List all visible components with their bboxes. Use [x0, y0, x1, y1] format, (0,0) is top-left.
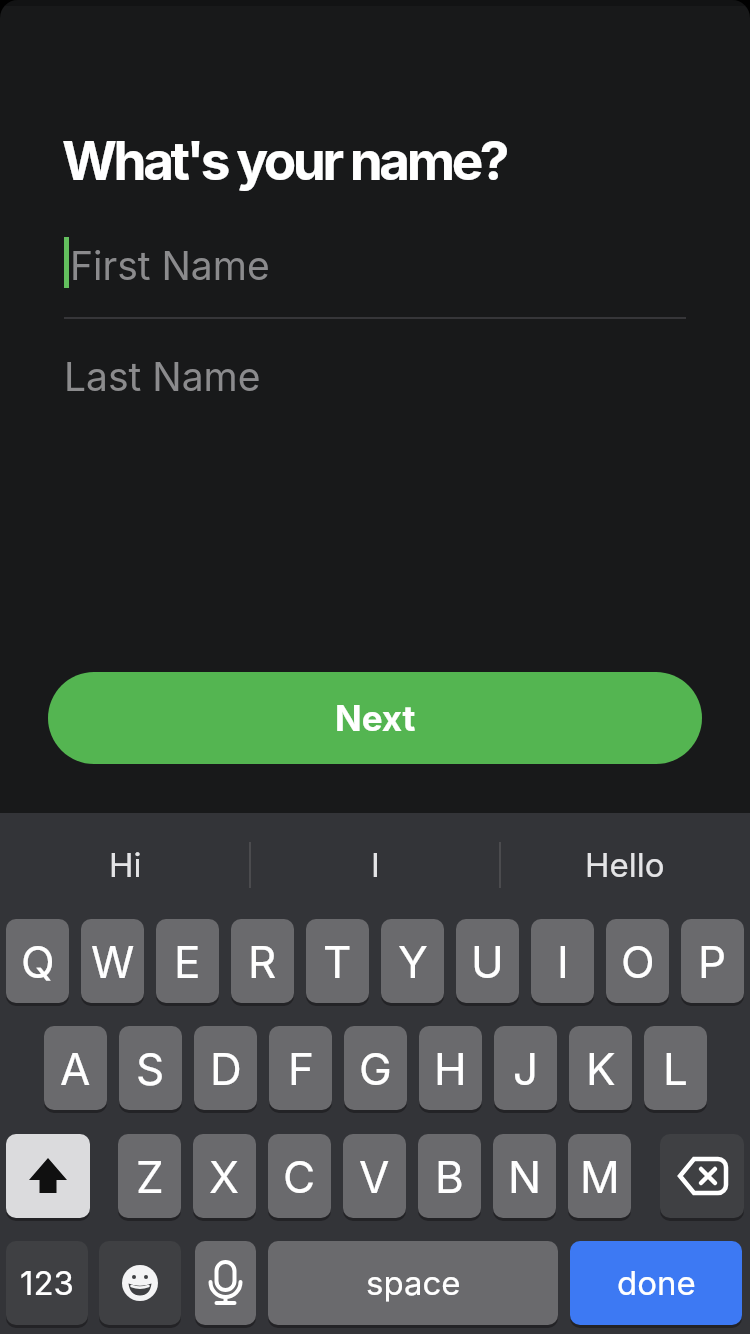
- button[interactable]: Q: [6, 919, 69, 1003]
- staticText: E: [174, 935, 201, 988]
- button[interactable]: [6, 1134, 90, 1218]
- button[interactable]: Hi: [0, 813, 250, 917]
- staticText: done: [617, 1263, 696, 1303]
- button[interactable]: Y: [381, 919, 444, 1003]
- staticText: B: [435, 1150, 464, 1203]
- button[interactable]: G: [344, 1026, 407, 1110]
- button[interactable]: Hello: [500, 813, 750, 917]
- staticText: Z: [136, 1150, 164, 1203]
- button[interactable]: Next: [48, 672, 702, 764]
- button[interactable]: done: [570, 1241, 742, 1325]
- staticText: Q: [21, 935, 55, 988]
- button[interactable]: 123: [6, 1241, 88, 1325]
- button[interactable]: P: [681, 919, 744, 1003]
- button[interactable]: U: [456, 919, 519, 1003]
- staticText: Hello: [585, 845, 665, 885]
- staticText: First Name: [70, 242, 270, 289]
- button[interactable]: B: [418, 1134, 481, 1218]
- staticText: Next: [335, 697, 416, 739]
- staticText: U: [471, 935, 504, 988]
- staticText: K: [586, 1042, 616, 1095]
- staticText: J: [513, 1042, 539, 1095]
- button[interactable]: Last Name: [64, 345, 684, 415]
- button[interactable]: [99, 1241, 181, 1325]
- staticText: P: [698, 935, 727, 988]
- button[interactable]: V: [343, 1134, 406, 1218]
- staticText: F: [288, 1042, 314, 1095]
- staticText: T: [323, 935, 352, 988]
- staticText: I: [557, 935, 569, 988]
- button[interactable]: C: [268, 1134, 331, 1218]
- staticText: M: [580, 1150, 620, 1203]
- button[interactable]: First Name: [68, 230, 688, 300]
- staticText: O: [621, 935, 655, 988]
- staticText: V: [359, 1150, 390, 1203]
- staticText: G: [359, 1042, 392, 1095]
- button[interactable]: I: [250, 813, 500, 917]
- staticText: C: [283, 1150, 316, 1203]
- staticText: space: [366, 1263, 461, 1303]
- button[interactable]: E: [156, 919, 219, 1003]
- staticText: A: [60, 1042, 91, 1095]
- staticText: What's your name?: [62, 129, 507, 193]
- button[interactable]: [195, 1241, 256, 1325]
- button[interactable]: space: [268, 1241, 558, 1325]
- button[interactable]: J: [494, 1026, 557, 1110]
- staticText: L: [663, 1042, 688, 1095]
- button[interactable]: F: [269, 1026, 332, 1110]
- button[interactable]: L: [644, 1026, 707, 1110]
- button[interactable]: W: [81, 919, 144, 1003]
- button[interactable]: H: [419, 1026, 482, 1110]
- button[interactable]: D: [194, 1026, 257, 1110]
- staticText: W: [91, 935, 135, 988]
- staticText: R: [248, 935, 277, 988]
- staticText: N: [508, 1150, 542, 1203]
- staticText: D: [210, 1042, 242, 1095]
- button[interactable]: [660, 1134, 744, 1218]
- button[interactable]: I: [531, 919, 594, 1003]
- button[interactable]: O: [606, 919, 669, 1003]
- staticText: Last Name: [64, 353, 261, 400]
- button[interactable]: M: [568, 1134, 631, 1218]
- button[interactable]: N: [493, 1134, 556, 1218]
- staticText: I: [371, 845, 380, 885]
- staticText: S: [136, 1042, 165, 1095]
- button[interactable]: R: [231, 919, 294, 1003]
- staticText: 123: [20, 1263, 74, 1303]
- button[interactable]: A: [44, 1026, 107, 1110]
- staticText: X: [209, 1150, 240, 1203]
- button[interactable]: Z: [118, 1134, 181, 1218]
- button[interactable]: T: [306, 919, 369, 1003]
- staticText: Hi: [109, 845, 142, 885]
- staticText: Y: [398, 935, 428, 988]
- button[interactable]: S: [119, 1026, 182, 1110]
- button[interactable]: K: [569, 1026, 632, 1110]
- button[interactable]: X: [193, 1134, 256, 1218]
- staticText: H: [434, 1042, 467, 1095]
